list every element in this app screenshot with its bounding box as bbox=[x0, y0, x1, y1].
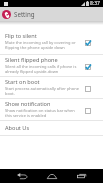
button[interactable]: About Us bbox=[0, 121, 103, 135]
staticText: Start process automatically after phone … bbox=[5, 86, 79, 96]
staticText: Show notification on status bar when thi… bbox=[5, 108, 75, 118]
button[interactable]: Setting bbox=[0, 7, 103, 21]
staticText: About Us bbox=[5, 124, 30, 132]
button[interactable]: Flip to silent bbox=[0, 31, 103, 54]
button[interactable]: Show notification bbox=[0, 99, 103, 120]
button[interactable]: Start on boot bbox=[0, 77, 103, 98]
staticText: Silent all the incoming calls if phone i… bbox=[5, 64, 77, 74]
button[interactable]: Back bbox=[14, 169, 30, 183]
button[interactable]: Recent apps bbox=[73, 169, 89, 183]
staticText: Mute the incoming call by covering or fl… bbox=[5, 40, 76, 50]
staticText: Flip to silent bbox=[5, 32, 37, 40]
button[interactable]: Home bbox=[44, 169, 60, 183]
staticText: Setting bbox=[14, 10, 35, 18]
staticText: 8:37 bbox=[90, 0, 100, 7]
staticText: Show notification bbox=[5, 100, 51, 108]
staticText: Silent flipped phone bbox=[5, 56, 58, 64]
staticText: Start on boot bbox=[5, 78, 40, 86]
button[interactable]: Silent flipped phone bbox=[0, 55, 103, 76]
